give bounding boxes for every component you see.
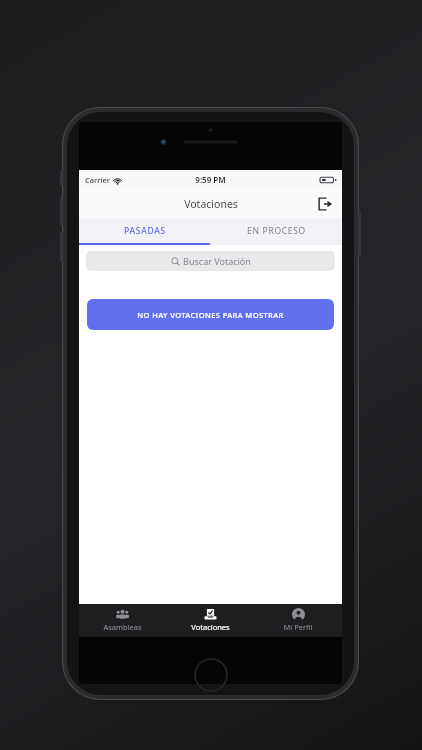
staticText: Votaciones [184, 197, 238, 211]
staticText: Mi Perfil [283, 622, 313, 632]
staticText: Carrier [85, 175, 110, 185]
staticText: Votaciones [191, 622, 230, 632]
button[interactable]: Votaciones [166, 604, 254, 637]
staticText: Asambleas [103, 622, 142, 632]
button[interactable]: Asambleas [79, 604, 166, 637]
button[interactable]: NO HAY VOTACIONES PARA MOSTRAR [87, 299, 334, 330]
staticText: 9:59 PM [195, 174, 226, 185]
button[interactable]: EN PROCESO [210, 218, 342, 243]
staticText: Buscar Votación [183, 255, 251, 267]
button[interactable]: Buscar Votación [86, 251, 335, 271]
staticText: NO HAY VOTACIONES PARA MOSTRAR [137, 310, 284, 320]
button[interactable]: PASADAS [79, 218, 210, 243]
button[interactable]: Mi Perfil [254, 604, 342, 637]
staticText: PASADAS [124, 225, 166, 237]
button[interactable]: Cerrar sesión [314, 193, 336, 215]
staticText: EN PROCESO [247, 225, 306, 237]
